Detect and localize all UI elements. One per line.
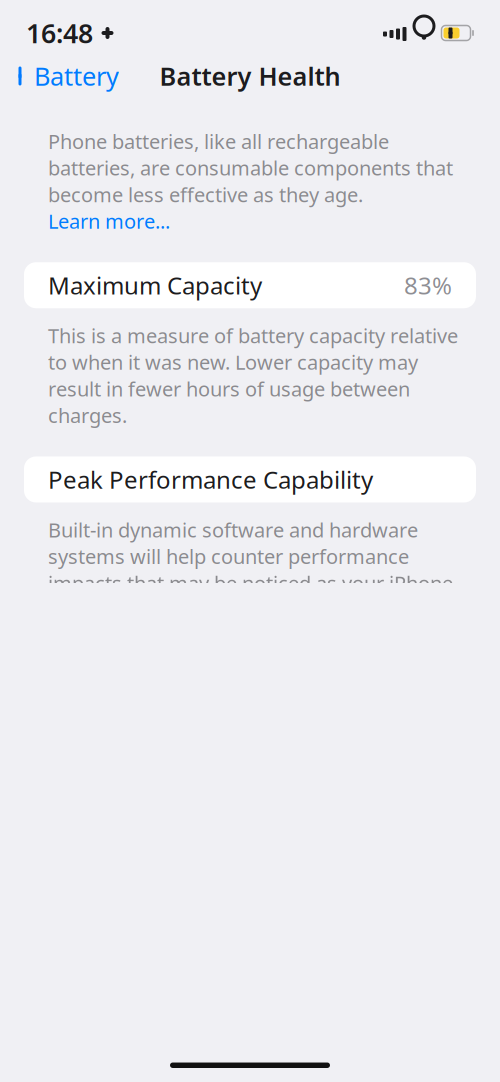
staticText: Battery Health (159, 59, 340, 93)
button[interactable]: Learn more... (48, 208, 170, 234)
staticText: Learn more... (48, 208, 170, 234)
staticText: Built-in dynamic software and hardware s… (48, 516, 453, 623)
staticText: Phone batteries, like all rechargeable b… (48, 128, 453, 208)
staticText: 83% (404, 269, 452, 301)
staticText: 16:48 (26, 15, 93, 51)
button[interactable]: Maximum Capacity (24, 262, 476, 308)
button[interactable]: Battery (0, 51, 135, 101)
staticText: Peak Performance Capability (48, 463, 373, 495)
staticText: Battery (34, 59, 119, 93)
staticText: Maximum Capacity (48, 269, 262, 301)
button[interactable]: Peak Performance Capability (24, 456, 476, 502)
staticText: This is a measure of battery capacity re… (48, 322, 458, 428)
